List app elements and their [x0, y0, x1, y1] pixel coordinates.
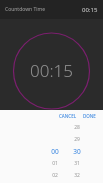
- staticText: 02: [52, 172, 58, 179]
- staticText: 31: [74, 160, 80, 167]
- staticText: Countdown Time: [5, 6, 46, 13]
- button[interactable]: DONE: [80, 112, 99, 120]
- staticText: 29: [74, 136, 80, 143]
- staticText: 01: [52, 160, 58, 167]
- staticText: 00:15: [82, 6, 98, 14]
- staticText: DONE: [83, 113, 96, 119]
- button[interactable]: Minutes: [48, 121, 62, 183]
- staticText: 00:15: [30, 59, 73, 82]
- button[interactable]: Countdown Time: [0, 0, 103, 19]
- staticText: 30: [73, 147, 81, 156]
- staticText: 00: [51, 147, 59, 156]
- staticText: CANCEL: [59, 113, 77, 119]
- staticText: 32: [74, 172, 80, 179]
- button[interactable]: CANCEL: [56, 112, 80, 120]
- staticText: 28: [74, 124, 80, 131]
- button[interactable]: Seconds: [70, 121, 84, 183]
